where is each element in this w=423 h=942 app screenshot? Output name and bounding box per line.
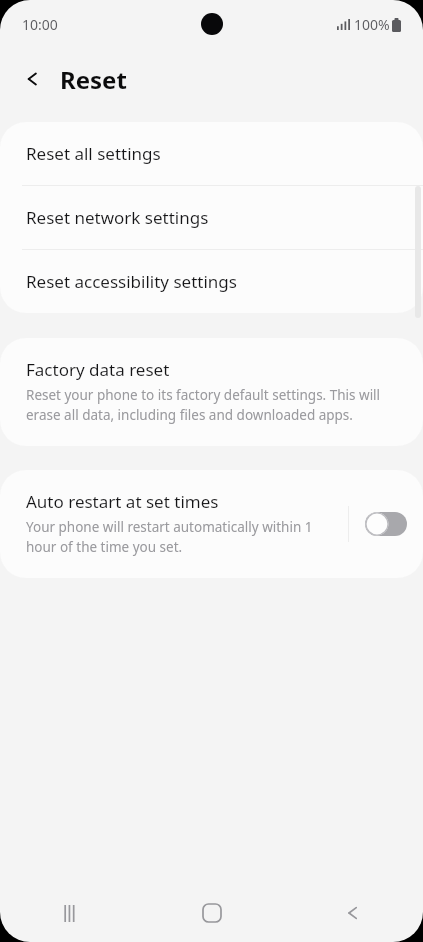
staticText: Reset [60,63,127,96]
staticText: Your phone will restart automatically wi… [26,518,340,556]
staticText: Reset network settings [26,206,209,229]
staticText: Reset all settings [26,142,161,165]
button[interactable]: Reset accessibility settings [0,250,423,313]
button[interactable]: Auto restart at set times [0,470,348,578]
staticText: Reset accessibility settings [26,270,237,293]
button[interactable]: Home [141,884,282,942]
staticText: Reset your phone to its factory default … [26,386,393,424]
button[interactable]: Back [282,884,423,942]
button[interactable]: Recent apps [0,884,141,942]
staticText: Factory data reset [26,358,170,381]
button[interactable]: Reset network settings [0,186,423,249]
button[interactable]: Auto restart at set times toggle [363,502,409,546]
staticText: 100% [354,15,390,34]
button[interactable]: Reset all settings [0,122,423,185]
staticText: Auto restart at set times [26,490,219,513]
button[interactable]: Back [12,58,54,100]
button[interactable]: Factory data reset [0,338,423,446]
staticText: 10:00 [22,15,58,34]
